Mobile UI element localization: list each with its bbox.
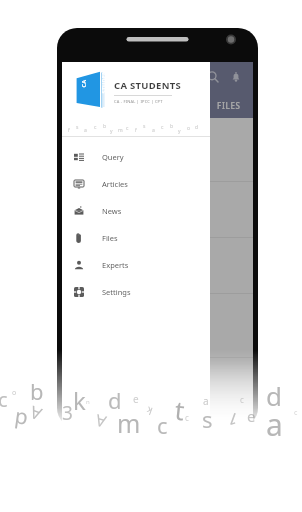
button[interactable]: Search — [202, 66, 224, 88]
staticText: m — [117, 406, 141, 440]
staticText: c — [185, 412, 189, 423]
staticText: t — [173, 392, 187, 427]
staticText: CA STUDENTS — [114, 79, 182, 92]
staticText: n — [86, 398, 90, 406]
staticText: a — [266, 404, 283, 445]
staticText: c — [94, 124, 97, 131]
staticText: b — [103, 123, 107, 130]
staticText: d — [108, 385, 122, 415]
staticText: s — [202, 404, 213, 434]
staticText: Experts — [102, 260, 129, 270]
staticText: c — [240, 394, 244, 405]
staticText: Settings — [102, 287, 131, 297]
staticText: 3 — [62, 400, 73, 426]
staticText: Articles — [102, 179, 128, 189]
staticText: News — [102, 206, 122, 216]
button[interactable]: Notifications — [225, 66, 247, 88]
staticText: c — [157, 410, 168, 440]
staticText: India's Best CA Coaching Notes — [72, 126, 189, 137]
staticText: c — [126, 125, 129, 132]
staticText: y — [110, 128, 113, 135]
staticText: k — [73, 384, 86, 417]
staticText: CA - FINAL | IPCC | CPT — [114, 99, 163, 104]
staticText: k — [144, 403, 154, 419]
staticText: FILES — [217, 100, 241, 111]
staticText: A — [92, 409, 109, 433]
staticText: a — [152, 127, 155, 134]
staticText: b — [170, 123, 174, 130]
button[interactable]: Experts — [62, 251, 210, 278]
staticText: STUDENTS — [99, 63, 106, 93]
staticText: s — [143, 123, 146, 130]
staticText: d — [195, 124, 199, 131]
button[interactable]: Settings — [62, 278, 210, 305]
button[interactable]: Query — [62, 143, 210, 170]
staticText: f — [68, 127, 70, 134]
staticText: b — [30, 376, 44, 406]
staticText: c — [0, 386, 8, 413]
staticText: c — [294, 408, 298, 418]
button[interactable]: Articles — [62, 170, 210, 197]
staticText: o — [12, 388, 17, 398]
staticText: 1 — [224, 407, 242, 432]
staticText: d — [266, 378, 282, 413]
staticText: Query — [102, 152, 124, 162]
staticText: Files — [102, 233, 118, 243]
staticText: CA — [79, 79, 86, 87]
staticText: s — [76, 124, 79, 131]
staticText: a — [203, 394, 209, 408]
staticText: f — [135, 127, 137, 134]
staticText: m — [118, 127, 123, 134]
button[interactable]: News — [62, 197, 210, 224]
staticText: p — [13, 401, 30, 432]
staticText: A — [26, 401, 45, 426]
staticText: y — [178, 128, 181, 135]
staticText: o — [187, 125, 191, 132]
staticText: c — [161, 124, 164, 131]
staticText: e — [133, 392, 139, 406]
button[interactable]: Files — [62, 224, 210, 251]
staticText: a — [84, 127, 87, 134]
staticText: e — [247, 406, 256, 426]
